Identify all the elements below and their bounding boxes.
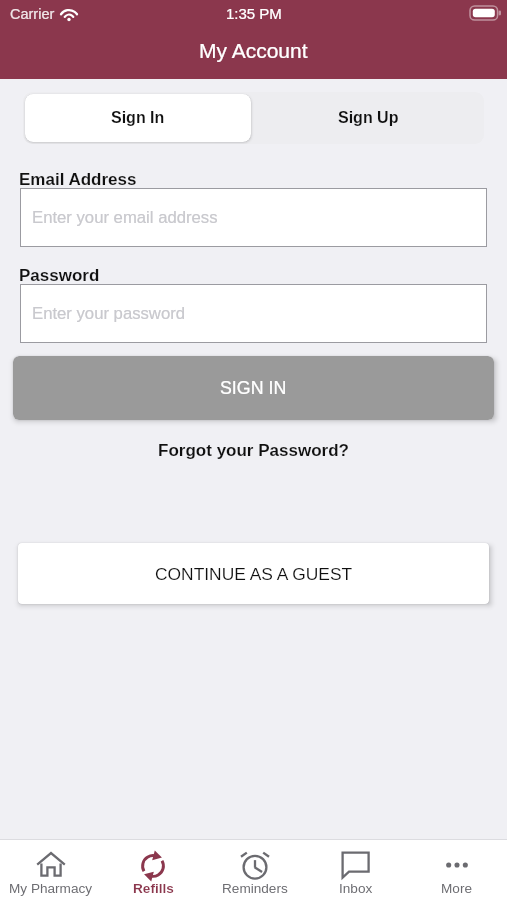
staticText: Reminders <box>222 881 288 896</box>
staticText: Password <box>19 266 100 285</box>
staticText: My Account <box>199 39 308 62</box>
button[interactable]: Sign In <box>25 94 251 142</box>
staticText: Sign In <box>111 109 165 127</box>
button[interactable]: More <box>406 840 507 900</box>
staticText: Carrier <box>10 6 55 22</box>
button[interactable]: SIGN IN <box>13 356 494 420</box>
button[interactable]: Enter your password <box>20 284 487 343</box>
button[interactable]: Inbox <box>305 840 406 900</box>
staticText: My Pharmacy <box>9 881 93 896</box>
staticText: Email Address <box>19 170 137 189</box>
staticText: Enter your password <box>32 304 186 323</box>
button[interactable]: Reminders <box>204 840 305 900</box>
staticText: More <box>441 881 472 896</box>
staticText: Sign Up <box>338 109 399 127</box>
button[interactable]: Refills <box>102 840 204 900</box>
staticText: Inbox <box>339 881 373 896</box>
button[interactable]: My Pharmacy <box>0 840 102 900</box>
staticText: 1:35 PM <box>226 5 282 22</box>
staticText: SIGN IN <box>220 378 287 398</box>
button[interactable]: Enter your email address <box>20 188 487 247</box>
staticText: CONTINUE AS A GUEST <box>155 564 353 583</box>
staticText: Enter your email address <box>32 208 218 227</box>
button[interactable]: CONTINUE AS A GUEST <box>18 543 489 604</box>
button[interactable]: Forgot your Password? <box>0 441 507 460</box>
staticText: Refills <box>133 881 174 896</box>
button[interactable]: Sign Up <box>253 92 484 144</box>
